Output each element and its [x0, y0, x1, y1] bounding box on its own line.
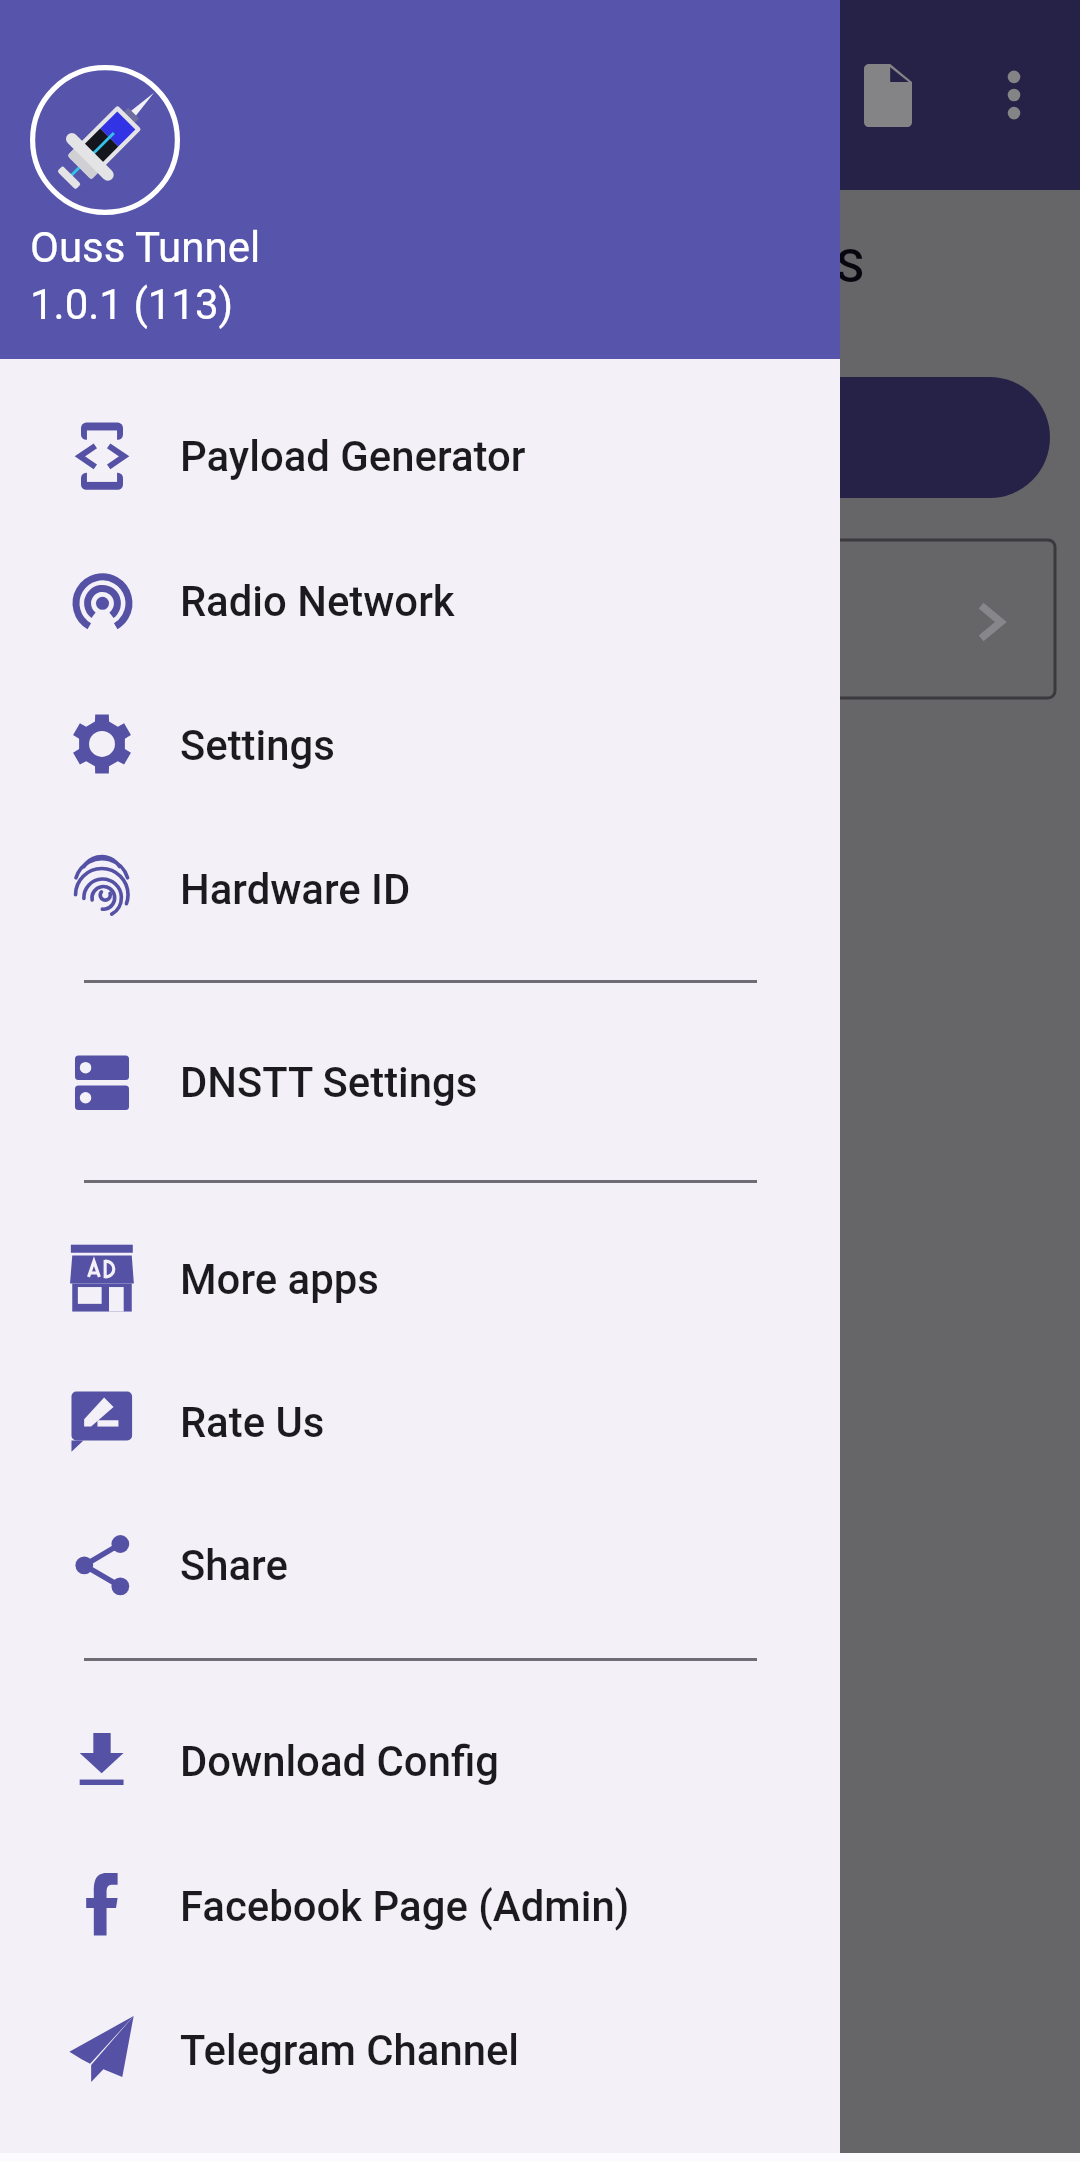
staticText: More apps — [180, 1255, 379, 1304]
staticText: Payload Generator — [180, 432, 526, 481]
staticText: Facebook Page (Admin) — [180, 1882, 630, 1931]
staticText: Radio Network — [180, 577, 455, 626]
button[interactable]: Settings — [0, 673, 840, 817]
staticText: Hardware ID — [180, 865, 411, 914]
button[interactable]: Download Config — [0, 1689, 840, 1833]
button[interactable]: Hardware ID — [0, 817, 840, 961]
staticText: Telegram Channel — [180, 2026, 520, 2075]
button[interactable] — [696, 540, 1055, 698]
button[interactable]: Telegram Channel — [0, 1978, 840, 2122]
button[interactable]: More apps — [0, 1207, 840, 1351]
button[interactable]: Radio Network — [0, 529, 840, 673]
staticText: 1.0.1 (113) — [30, 280, 234, 329]
button[interactable]: Connect — [690, 377, 1050, 498]
button[interactable]: Rate Us — [0, 1350, 840, 1494]
staticText: Settings — [180, 721, 335, 770]
button[interactable]: Share — [0, 1493, 840, 1637]
staticText: Rate Us — [180, 1398, 325, 1447]
staticText: DNSTT Settings — [180, 1058, 478, 1107]
button[interactable]: File — [840, 47, 936, 143]
button[interactable]: DNSTT Settings — [0, 1010, 840, 1154]
staticText: Share — [180, 1541, 288, 1590]
staticText: Download Config — [180, 1737, 499, 1786]
button[interactable]: Facebook Page (Admin) — [0, 1834, 840, 1978]
button[interactable]: Payload Generator — [0, 384, 840, 528]
staticText: S — [836, 239, 864, 293]
button[interactable]: More options — [966, 47, 1062, 143]
staticText: Ouss Tunnel — [30, 223, 261, 272]
